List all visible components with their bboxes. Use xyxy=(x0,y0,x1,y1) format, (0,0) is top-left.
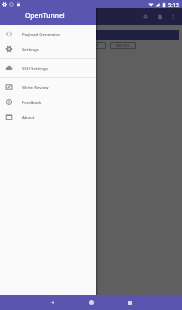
staticText: Payload Generator xyxy=(22,31,61,37)
button[interactable]: Write Review xyxy=(0,79,96,94)
button[interactable]: More options xyxy=(167,8,179,25)
staticText: 5:13 xyxy=(168,1,179,8)
staticText: Settings xyxy=(22,46,39,52)
button[interactable]: Settings xyxy=(0,41,96,56)
staticText: About xyxy=(22,114,35,120)
button[interactable]: Logs xyxy=(153,8,166,25)
button[interactable]: About xyxy=(0,109,96,124)
staticText: Feedback xyxy=(22,99,42,105)
button[interactable]: Feedback xyxy=(0,94,96,109)
staticText: SSH Settings xyxy=(22,65,48,71)
button[interactable]: SSH Settings xyxy=(0,60,96,75)
staticText: OpenTunnel xyxy=(25,11,65,20)
button[interactable]: Back xyxy=(37,295,67,310)
button[interactable]: PROXY xyxy=(80,42,106,49)
button[interactable]: Settings xyxy=(139,8,152,25)
button[interactable]: Payload Generator xyxy=(0,26,96,41)
button[interactable]: SSL/TLS xyxy=(110,42,136,49)
staticText: PROXY xyxy=(87,43,99,48)
staticText: SSL/TLS xyxy=(116,43,130,48)
staticText: Write Review xyxy=(22,84,49,90)
button[interactable]: Home xyxy=(76,295,106,310)
button[interactable]: Recents xyxy=(115,295,145,310)
